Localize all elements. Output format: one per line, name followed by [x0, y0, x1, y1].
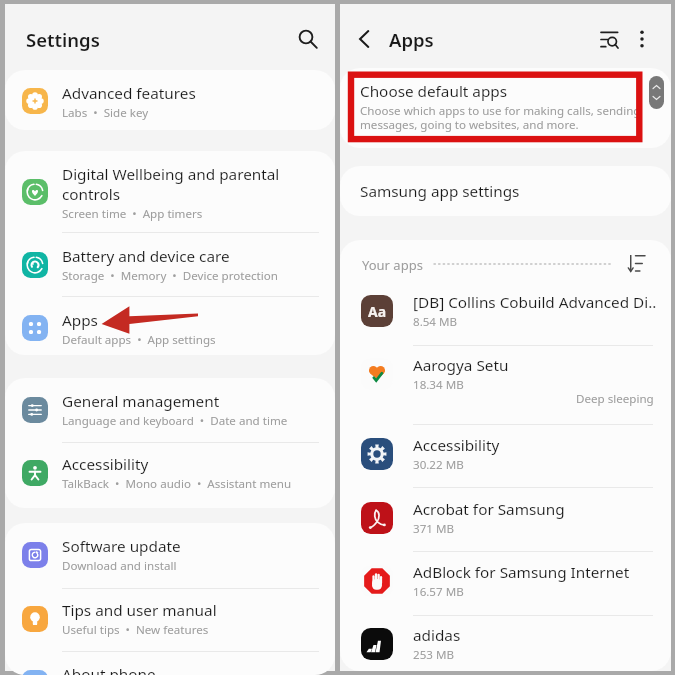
staticText: 371 MB	[413, 521, 454, 537]
button[interactable]: Back	[343, 18, 385, 60]
button[interactable]	[340, 166, 671, 216]
button[interactable]	[5, 442, 335, 508]
staticText: Digital Wellbeing and parental controls	[62, 164, 280, 205]
staticText: Samsung app settings	[360, 181, 520, 202]
button[interactable]: Fast scroll	[649, 76, 664, 109]
staticText: 16.57 MB	[413, 584, 464, 600]
button[interactable]	[340, 487, 671, 551]
button[interactable]: Settings	[8, 18, 118, 60]
staticText: Acrobat for Samsung	[413, 499, 565, 520]
staticText: 253 MB	[413, 647, 454, 663]
button[interactable]	[5, 70, 335, 130]
staticText: Accessibility	[413, 435, 500, 456]
staticText: General management	[62, 391, 220, 412]
button[interactable]	[5, 151, 335, 232]
button[interactable]: More options	[621, 18, 663, 60]
staticText: Useful tips • New features	[62, 622, 209, 638]
button[interactable]	[5, 588, 335, 651]
button[interactable]	[5, 523, 335, 587]
staticText: Screen time • App timers	[62, 206, 203, 222]
staticText: Apps	[389, 27, 434, 52]
staticText: About phone	[62, 664, 156, 675]
staticText: Settings	[26, 27, 100, 52]
button[interactable]	[5, 296, 335, 355]
staticText: 30.22 MB	[413, 457, 464, 473]
staticText: Choose default apps	[360, 81, 508, 102]
button[interactable]	[5, 651, 335, 675]
staticText: Your apps	[362, 256, 423, 274]
staticText: 18.34 MB	[413, 377, 464, 393]
staticText: Apps	[62, 310, 98, 331]
button[interactable]: Search apps	[588, 18, 630, 60]
staticText: Labs • Side key	[62, 105, 149, 121]
staticText: AdBlock for Samsung Internet	[413, 562, 630, 583]
button[interactable]: Sort	[622, 249, 650, 277]
staticText: Default apps • App settings	[62, 332, 216, 348]
staticText: Aarogya Setu	[413, 355, 509, 376]
button[interactable]	[5, 232, 335, 296]
staticText: [DB] Collins Cobuild Advanced Di..	[413, 292, 657, 313]
staticText: Download and install	[62, 558, 177, 574]
staticText: Aa	[368, 302, 387, 321]
staticText: Language and keyboard • Date and time	[62, 413, 288, 429]
button[interactable]	[340, 68, 671, 148]
staticText: Deep sleeping	[576, 391, 654, 407]
button[interactable]	[5, 378, 335, 442]
button[interactable]: Search	[287, 18, 329, 60]
staticText: adidas	[413, 625, 461, 646]
button[interactable]	[340, 345, 671, 424]
staticText: Accessibility	[62, 454, 149, 475]
button[interactable]	[340, 424, 671, 487]
button[interactable]	[340, 285, 671, 345]
button[interactable]	[340, 615, 671, 671]
staticText: 8.54 MB	[413, 314, 458, 330]
staticText: Software update	[62, 536, 181, 557]
staticText: Storage • Memory • Device protection	[62, 268, 278, 284]
staticText: Choose which apps to use for making call…	[360, 103, 652, 133]
staticText: Battery and device care	[62, 246, 230, 267]
staticText: Tips and user manual	[62, 600, 217, 621]
staticText: TalkBack • Mono audio • Assistant menu	[62, 476, 292, 492]
staticText: Advanced features	[62, 83, 196, 104]
button[interactable]	[340, 551, 671, 615]
